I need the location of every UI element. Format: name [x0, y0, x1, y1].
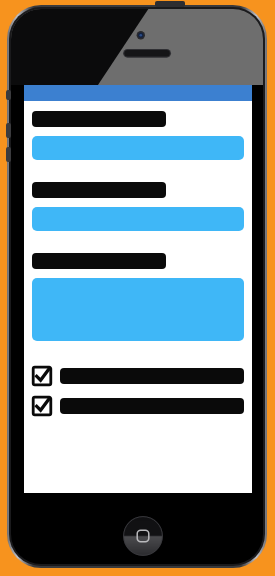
button[interactable]: Field label	[32, 253, 166, 269]
button[interactable]: Field label	[32, 182, 166, 198]
button[interactable]: Mute switch	[6, 90, 11, 100]
button[interactable]: Home	[123, 516, 163, 556]
button[interactable]: Volume up	[6, 123, 11, 138]
button[interactable]: Field label	[32, 111, 166, 127]
button[interactable]: Power	[155, 1, 185, 7]
button[interactable]: Checkbox option	[32, 365, 244, 387]
button[interactable]: Text input	[32, 207, 244, 231]
button[interactable]: Text input	[32, 136, 244, 160]
button[interactable]: Text input	[32, 278, 244, 341]
button[interactable]: Volume down	[6, 147, 11, 162]
button[interactable]: Checkbox option	[32, 395, 244, 417]
